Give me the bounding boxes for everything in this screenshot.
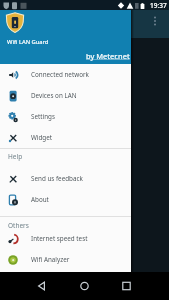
staticText: Internet speed test xyxy=(31,234,88,243)
staticText: Wifi Analyzer xyxy=(31,255,70,264)
staticText: About xyxy=(31,195,49,204)
button[interactable]: Connected network xyxy=(0,64,131,85)
button[interactable]: Internet speed test xyxy=(0,228,131,249)
button[interactable]: Wifi Analyzer xyxy=(0,249,131,270)
staticText: Devices on LAN xyxy=(31,91,77,100)
staticText: Widget xyxy=(31,133,53,142)
button[interactable]: Widget xyxy=(0,127,131,148)
staticText: Help xyxy=(8,152,23,161)
staticText: 19:37 xyxy=(150,1,167,10)
staticText: Others xyxy=(8,221,29,230)
button[interactable]: Settings xyxy=(0,106,131,127)
button[interactable]: by Meter.net xyxy=(86,51,130,61)
button[interactable]: About xyxy=(0,189,131,210)
button[interactable]: Send us feedback xyxy=(0,168,131,189)
button[interactable]: Devices on LAN xyxy=(0,85,131,106)
staticText: Wifi LAN Guard xyxy=(7,38,49,46)
staticText: Send us feedback xyxy=(31,174,83,183)
staticText: Connected network xyxy=(31,70,89,79)
staticText: Settings xyxy=(31,112,55,121)
